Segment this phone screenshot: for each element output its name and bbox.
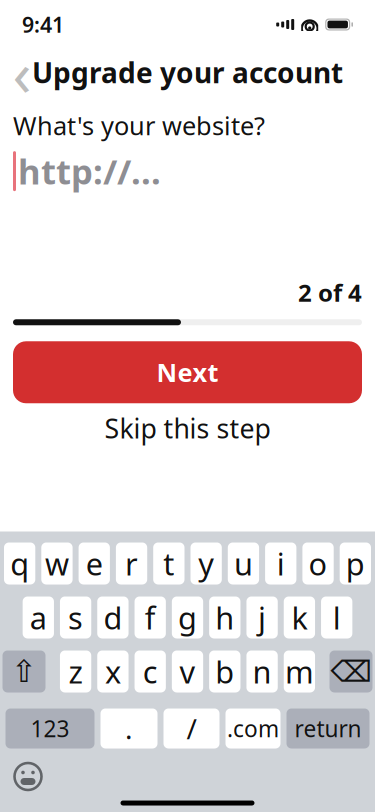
button[interactable]: p bbox=[340, 542, 371, 584]
staticText: c bbox=[143, 651, 158, 692]
staticText: a bbox=[30, 597, 47, 638]
button[interactable]: u bbox=[228, 542, 259, 584]
button[interactable]: q bbox=[4, 542, 35, 584]
button[interactable]: Next bbox=[13, 341, 362, 403]
staticText: p bbox=[346, 543, 365, 584]
staticText: x bbox=[105, 651, 121, 692]
staticText: http://... bbox=[18, 148, 161, 194]
staticText: v bbox=[179, 651, 195, 692]
button[interactable]: e bbox=[79, 542, 110, 584]
button[interactable]: Delete bbox=[329, 650, 372, 692]
button[interactable]: .com bbox=[225, 708, 280, 748]
button[interactable]: k bbox=[284, 596, 315, 638]
button[interactable]: f bbox=[134, 596, 166, 638]
staticText: 123 bbox=[30, 713, 69, 743]
staticText: What's your website? bbox=[13, 108, 265, 142]
staticText: / bbox=[186, 710, 196, 747]
button[interactable]: d bbox=[97, 596, 128, 638]
button[interactable]: b bbox=[209, 650, 240, 692]
staticText: f bbox=[145, 597, 156, 638]
staticText: Skip this step bbox=[104, 411, 270, 446]
staticText: h bbox=[215, 597, 234, 638]
button[interactable]: j bbox=[246, 596, 278, 638]
staticText: t bbox=[163, 543, 174, 584]
staticText: m bbox=[285, 651, 314, 692]
staticText: ⇧ bbox=[11, 654, 37, 689]
button[interactable]: g bbox=[172, 596, 203, 638]
staticText: y bbox=[198, 543, 214, 584]
button[interactable]: l bbox=[321, 596, 352, 638]
button[interactable]: s bbox=[60, 596, 91, 638]
button[interactable]: n bbox=[246, 650, 278, 692]
button[interactable]: o bbox=[302, 542, 334, 584]
button[interactable]: m bbox=[284, 650, 315, 692]
button[interactable]: h bbox=[209, 596, 240, 638]
staticText: q bbox=[10, 543, 29, 584]
button[interactable]: . bbox=[100, 708, 157, 748]
staticText: l bbox=[333, 597, 341, 638]
staticText: j bbox=[258, 597, 266, 638]
button[interactable]: return bbox=[286, 708, 369, 748]
staticText: g bbox=[178, 597, 197, 638]
staticText: .com bbox=[227, 713, 279, 743]
staticText: 9:41 bbox=[22, 10, 64, 39]
staticText: b bbox=[215, 651, 234, 692]
staticText: Next bbox=[156, 355, 218, 389]
button[interactable]: z bbox=[60, 650, 91, 692]
button[interactable]: i bbox=[265, 542, 296, 584]
button[interactable]: Skip this step bbox=[13, 407, 362, 449]
staticText: n bbox=[253, 651, 272, 692]
button[interactable]: 123 bbox=[5, 708, 94, 748]
staticText: o bbox=[308, 543, 327, 584]
button[interactable]: v bbox=[172, 650, 203, 692]
button[interactable]: Back bbox=[0, 50, 44, 94]
button[interactable]: r bbox=[116, 542, 147, 584]
button[interactable]: t bbox=[153, 542, 184, 584]
button[interactable]: c bbox=[134, 650, 166, 692]
staticText: . bbox=[125, 710, 133, 747]
staticText: ‹ bbox=[12, 32, 31, 113]
staticText: return bbox=[294, 713, 361, 743]
staticText: r bbox=[125, 543, 138, 584]
staticText: u bbox=[234, 543, 253, 584]
staticText: z bbox=[69, 651, 83, 692]
button[interactable]: x bbox=[97, 650, 128, 692]
button[interactable]: a bbox=[23, 596, 54, 638]
staticText: s bbox=[68, 597, 83, 638]
staticText: e bbox=[86, 543, 103, 584]
staticText: 2 of 4 bbox=[298, 276, 362, 308]
staticText: Upgrade your account bbox=[32, 54, 343, 91]
staticText: d bbox=[103, 597, 122, 638]
staticText: w bbox=[45, 543, 69, 584]
button[interactable]: Shift bbox=[2, 650, 45, 692]
button[interactable]: Emoji keyboard bbox=[6, 754, 50, 798]
staticText: k bbox=[291, 597, 307, 638]
staticText: ⌫ bbox=[330, 655, 371, 688]
staticText: i bbox=[277, 543, 285, 584]
button[interactable]: / bbox=[163, 708, 219, 748]
button[interactable]: y bbox=[190, 542, 222, 584]
button[interactable]: w bbox=[41, 542, 73, 584]
